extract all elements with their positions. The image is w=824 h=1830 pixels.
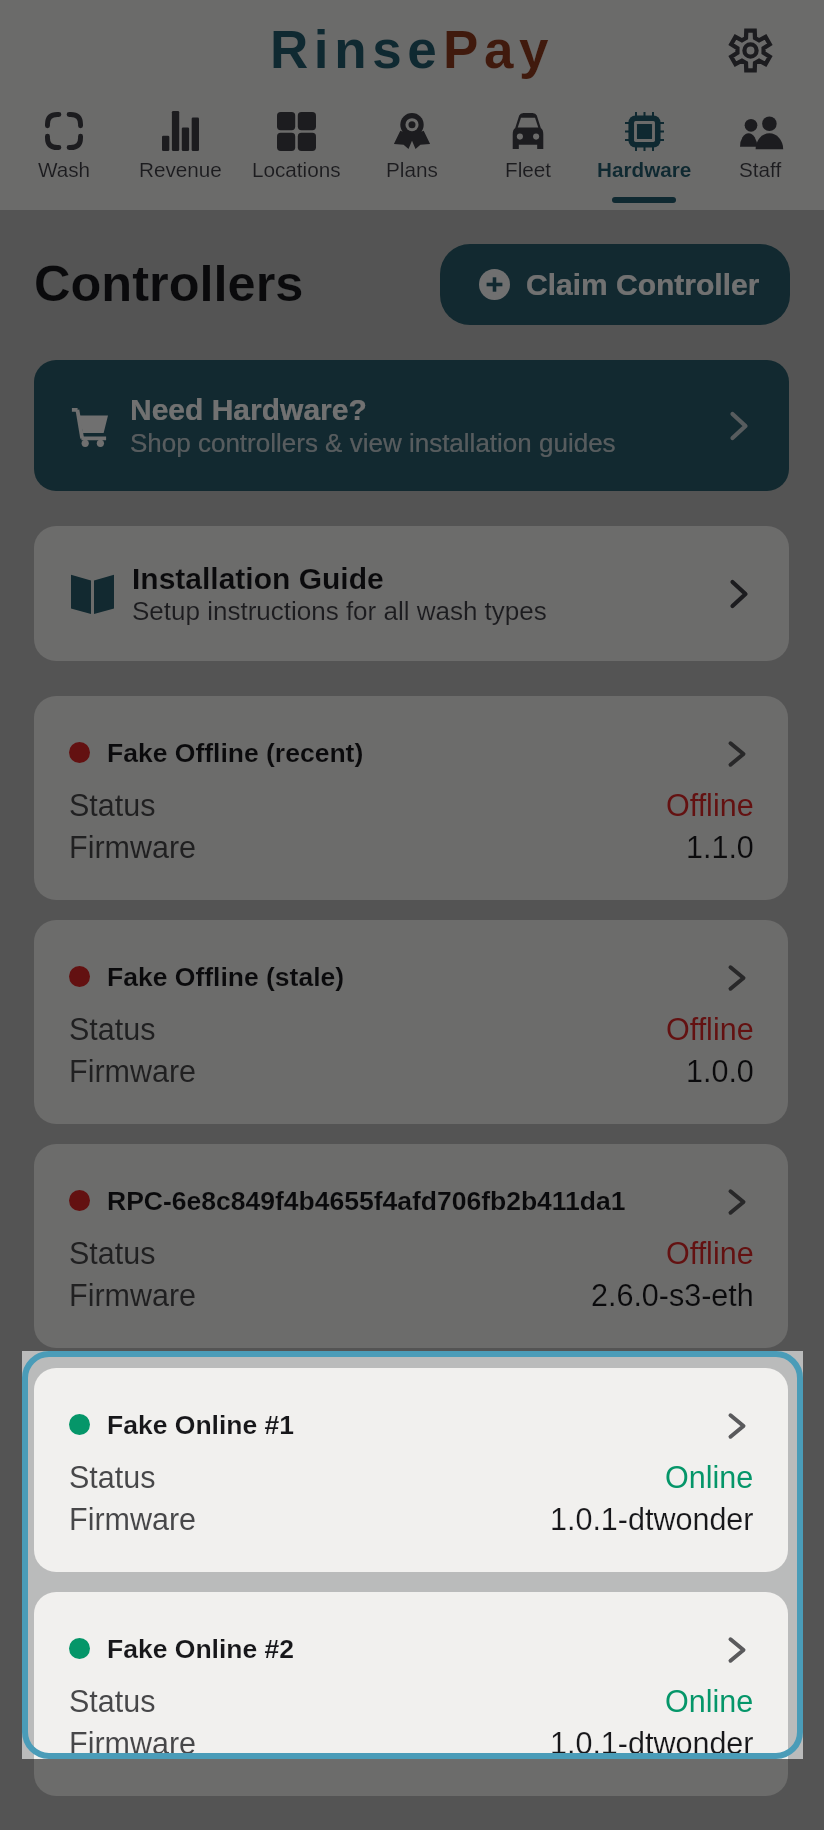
button[interactable]: Open controller xyxy=(715,732,759,776)
staticText: 2.6.0-s3-eth xyxy=(591,1278,754,1312)
button[interactable]: Open controller xyxy=(715,1180,759,1224)
staticText: Fake Offline (recent) xyxy=(107,738,364,768)
button[interactable]: Open controller xyxy=(715,1628,759,1672)
button[interactable]: Fake Offline (stale) xyxy=(34,920,788,1124)
button[interactable]: Staff xyxy=(702,105,818,217)
staticText: RPC-6e8c849f4b4655f4afd706fb2b411da1 xyxy=(107,1186,626,1216)
staticText: Online xyxy=(665,1684,754,1718)
button[interactable]: Claim Controller xyxy=(440,244,790,325)
staticText: Offline xyxy=(666,1236,754,1270)
button[interactable]: Revenue xyxy=(122,105,238,217)
staticText: Rinse xyxy=(270,20,443,79)
staticText: Claim Controller xyxy=(526,268,760,302)
staticText: Pay xyxy=(443,20,555,79)
staticText: Locations xyxy=(252,158,341,181)
staticText: Staff xyxy=(739,158,782,181)
staticText: Status xyxy=(69,1236,156,1270)
button[interactable]: RPC-6e8c849f4b4655f4afd706fb2b411da1 xyxy=(34,1144,788,1348)
staticText: Fake Online #1 xyxy=(107,1410,295,1440)
button[interactable]: Fake Online #1 xyxy=(34,1368,788,1572)
staticText: 1.1.0 xyxy=(686,830,754,864)
staticText: Status xyxy=(69,1684,156,1718)
button[interactable]: Open controller xyxy=(715,1404,759,1448)
button[interactable]: Plans xyxy=(354,105,470,217)
staticText: Offline xyxy=(666,1012,754,1046)
staticText: Setup instructions for all wash types xyxy=(132,596,547,625)
staticText: Offline xyxy=(666,788,754,822)
staticText: Status xyxy=(69,788,156,822)
staticText: Firmware xyxy=(69,1726,197,1760)
staticText: Fleet xyxy=(505,158,551,181)
staticText: Plans xyxy=(386,158,438,181)
button[interactable]: Settings xyxy=(726,26,774,74)
staticText: Revenue xyxy=(139,158,222,181)
staticText: Firmware xyxy=(69,830,197,864)
staticText: Need Hardware? xyxy=(130,393,367,427)
staticText: Firmware xyxy=(69,1278,197,1312)
staticText: Firmware xyxy=(69,1054,197,1088)
button[interactable]: Fake Offline (recent) xyxy=(34,696,788,900)
staticText: Status xyxy=(69,1460,156,1494)
button[interactable]: Wash xyxy=(6,105,122,217)
staticText: Fake Online #2 xyxy=(107,1634,295,1664)
staticText: Fake Offline (stale) xyxy=(107,962,345,992)
staticText: 1.0.1-dtwonder xyxy=(550,1502,754,1536)
button[interactable]: Installation Guide xyxy=(34,526,789,661)
staticText: Installation Guide xyxy=(132,562,384,596)
staticText: Firmware xyxy=(69,1502,197,1536)
staticText: Controllers xyxy=(34,255,304,311)
staticText: 1.0.0 xyxy=(686,1054,754,1088)
staticText: Online xyxy=(665,1460,754,1494)
staticText: Shop controllers & view installation gui… xyxy=(130,428,616,457)
staticText: Hardware xyxy=(597,158,692,181)
button[interactable]: Open controller xyxy=(715,956,759,1000)
button[interactable]: Hardware xyxy=(586,105,702,217)
staticText: Wash xyxy=(38,158,91,181)
button[interactable]: Locations xyxy=(238,105,354,217)
button[interactable]: Fleet xyxy=(470,105,586,217)
staticText: 1.0.1-dtwonder xyxy=(550,1726,754,1760)
button[interactable]: Fake Online #2 xyxy=(34,1592,788,1796)
button[interactable]: Need Hardware? xyxy=(34,360,789,491)
staticText: Status xyxy=(69,1012,156,1046)
